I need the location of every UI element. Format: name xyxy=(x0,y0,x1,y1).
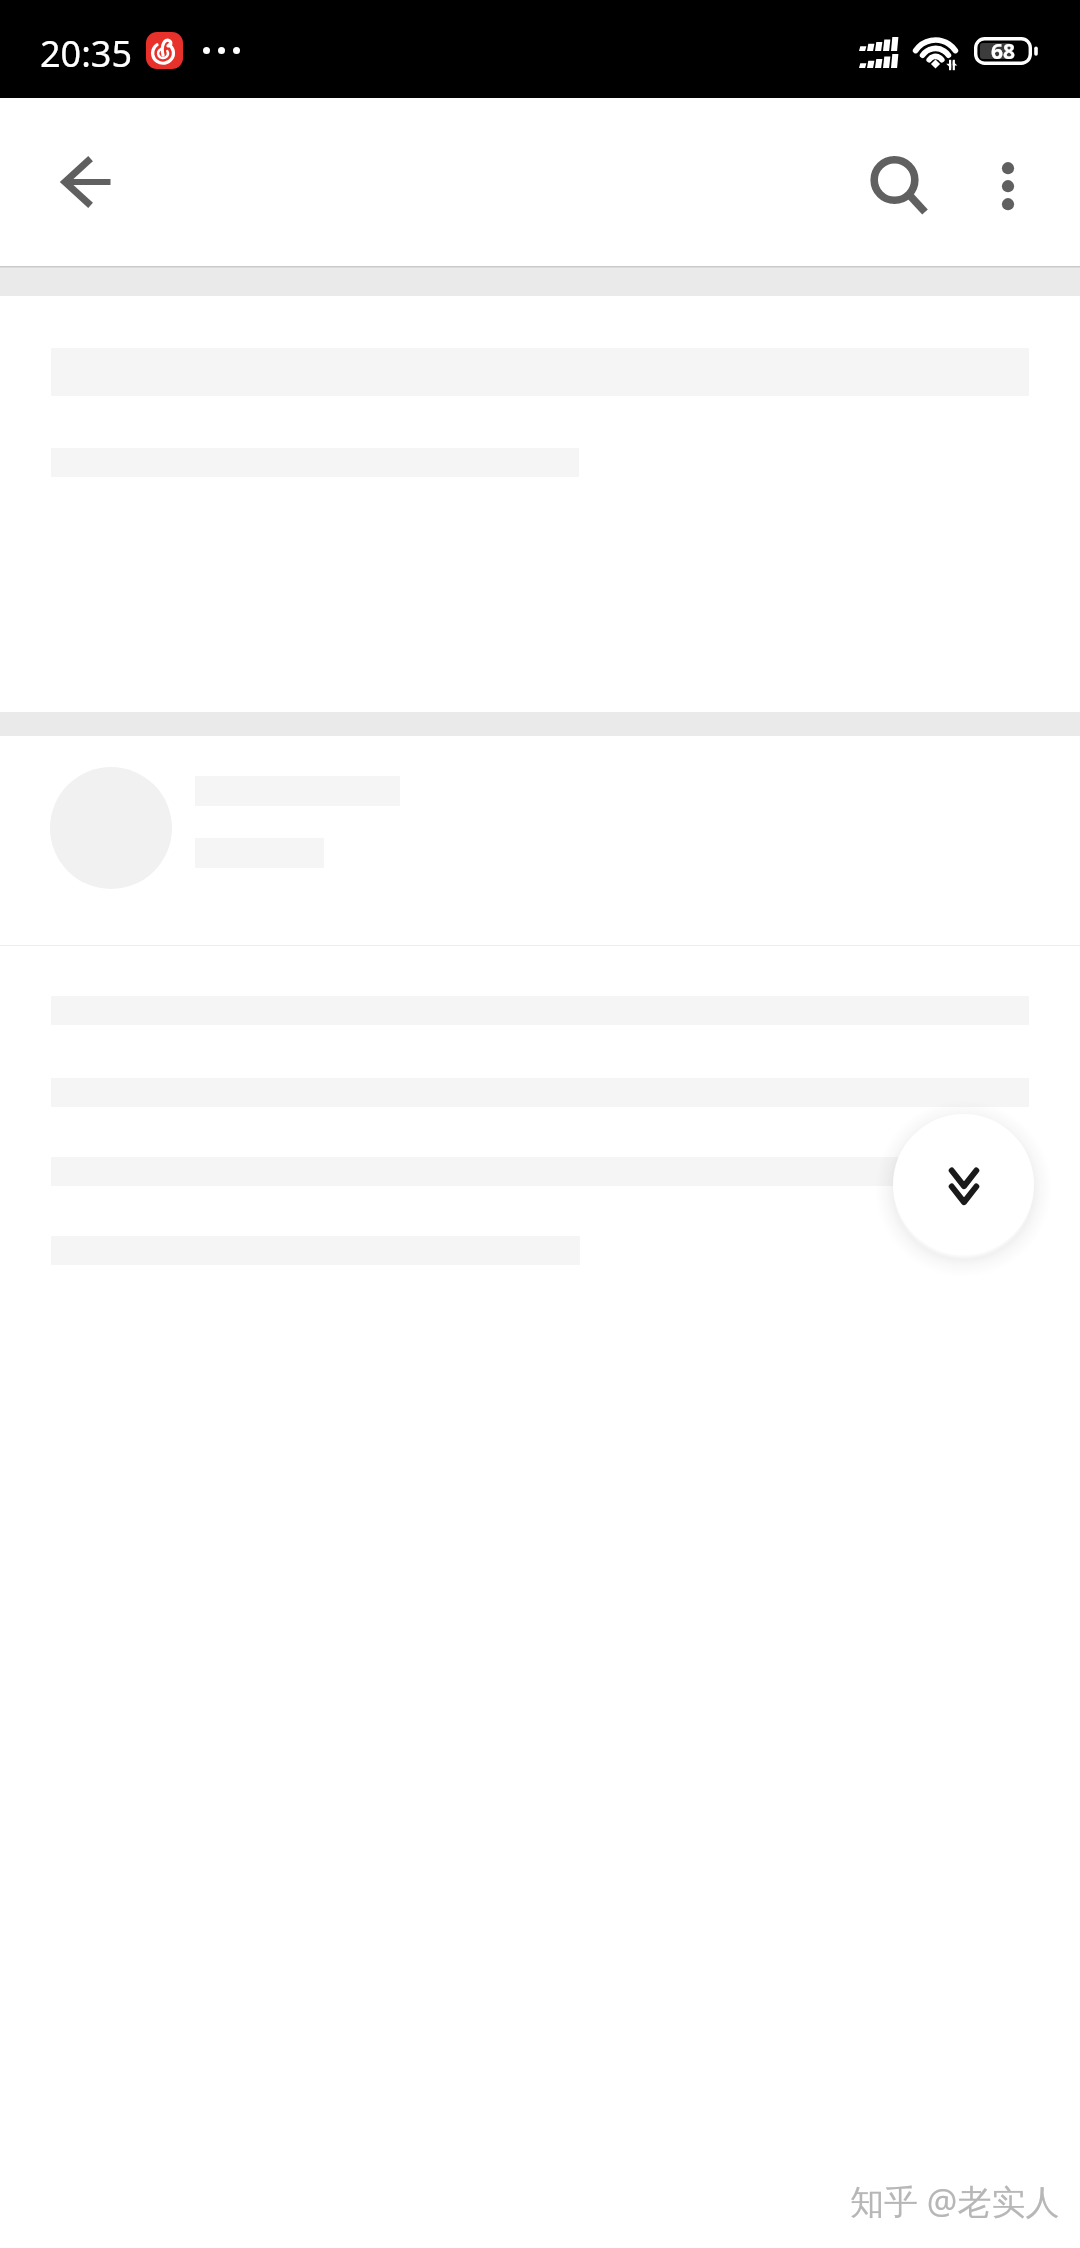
button[interactable]: Back xyxy=(33,126,145,238)
staticText: 68 xyxy=(991,37,1016,66)
button[interactable]: Search xyxy=(838,124,950,236)
staticText: 20:35 xyxy=(40,29,133,78)
button[interactable]: Scroll to bottom xyxy=(893,1114,1034,1255)
staticText: 知乎 @老实人 xyxy=(850,2178,1060,2224)
button[interactable]: More options xyxy=(952,131,1064,243)
